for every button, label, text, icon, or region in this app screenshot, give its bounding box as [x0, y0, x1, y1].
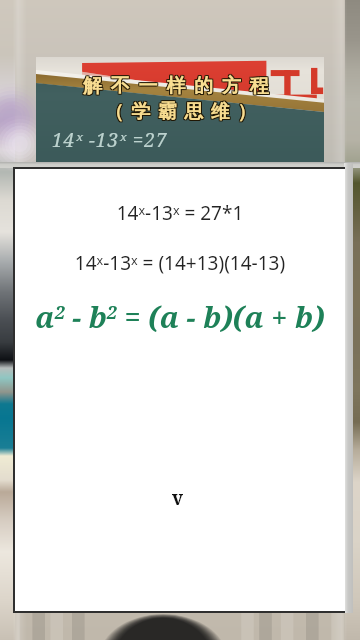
- staticText: 解不一样的方程: [82, 73, 277, 97]
- staticText: （学霸思维）: [101, 101, 260, 125]
- staticText: a2 − b2 = (a − b)(a + b): [15, 297, 345, 336]
- staticText: 解不一样的方程: [84, 75, 279, 99]
- staticText: 14x-13x = 27*1: [15, 200, 345, 226]
- staticText: （学霸思维）: [100, 100, 259, 124]
- staticText: 解不一样的方程: [83, 75, 278, 99]
- staticText: （学霸思维）: [102, 100, 261, 124]
- staticText: 解不一样的方程: [84, 74, 279, 98]
- staticText: （学霸思维）: [100, 99, 259, 123]
- staticText: 解不一样的方程: [82, 74, 277, 98]
- staticText: （学霸思维）: [101, 99, 260, 123]
- staticText: 解不一样的方程: [84, 73, 279, 97]
- staticText: （学霸思维）: [102, 99, 261, 123]
- staticText: （学霸思维）: [102, 101, 261, 125]
- staticText: 14ˣ −13ˣ =27: [52, 127, 168, 153]
- staticText: y: [172, 485, 184, 505]
- staticText: 解不一样的方程: [83, 73, 278, 97]
- staticText: （学霸思维）: [101, 100, 260, 124]
- staticText: （学霸思维）: [100, 101, 259, 125]
- staticText: 14x-13x = (14+13)(14-13): [15, 250, 345, 276]
- staticText: 解不一样的方程: [83, 74, 278, 98]
- staticText: 解不一样的方程: [82, 75, 277, 99]
